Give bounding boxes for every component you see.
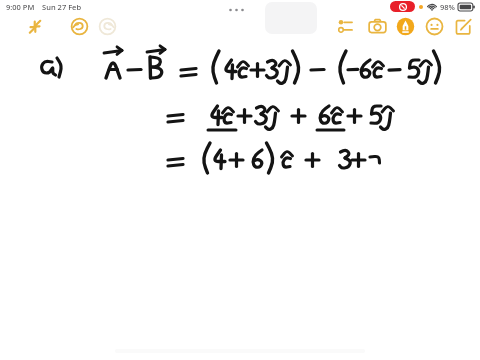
button[interactable]: Page options bbox=[224, 3, 248, 17]
button[interactable]: Camera bbox=[364, 13, 390, 39]
button[interactable]: Highlighter bbox=[392, 13, 418, 39]
staticText: 98% bbox=[440, 2, 455, 12]
button[interactable]: Outline bbox=[333, 13, 359, 39]
button[interactable]: Stop recording bbox=[390, 1, 415, 12]
button[interactable]: Redo bbox=[94, 13, 120, 39]
staticText: 9:00 PM Sun 27 Feb bbox=[6, 2, 82, 12]
button[interactable]: Sticker bbox=[421, 13, 447, 39]
button[interactable]: Exit full screen bbox=[22, 13, 48, 39]
button[interactable]: Undo bbox=[66, 13, 92, 39]
button[interactable]: New note bbox=[450, 13, 476, 39]
